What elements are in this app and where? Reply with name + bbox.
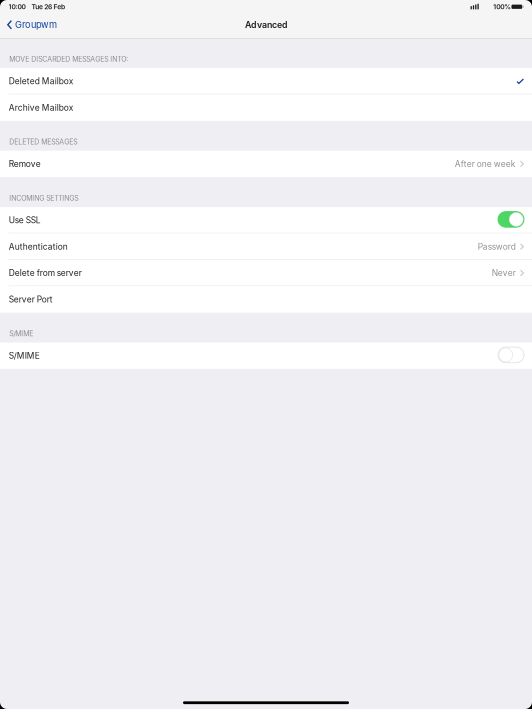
staticText: Never (492, 268, 516, 278)
button[interactable]: S/MIME (0, 342, 532, 369)
staticText: S/MIME (9, 351, 40, 361)
button[interactable]: Remove (0, 151, 532, 177)
staticText: 100% (493, 3, 511, 11)
staticText: Groupwm (15, 19, 57, 30)
staticText: S/MIME (9, 329, 33, 338)
staticText: DELETED MESSAGES (9, 138, 77, 146)
staticText: After one week (455, 159, 516, 169)
staticText: Archive Mailbox (9, 102, 74, 113)
button[interactable]: Deleted Mailbox (0, 68, 532, 94)
button[interactable]: Server Port (0, 286, 532, 313)
staticText: Authentication (9, 241, 68, 252)
staticText: 10:00 (9, 3, 26, 11)
button[interactable]: Delete from server (0, 260, 532, 286)
staticText: Tue 26 Feb (31, 3, 65, 11)
staticText: Deleted Mailbox (9, 76, 74, 86)
staticText: Delete from server (9, 268, 82, 278)
staticText: Use SSL (9, 215, 41, 225)
button[interactable]: Groupwm (0, 13, 63, 36)
staticText: Server Port (9, 294, 53, 304)
staticText: Password (478, 241, 516, 252)
staticText: Advanced (245, 19, 287, 30)
staticText: INCOMING SETTINGS (9, 194, 78, 202)
staticText: MOVE DISCARDED MESSAGES INTO: (9, 55, 128, 63)
button[interactable]: Authentication (0, 233, 532, 260)
button[interactable]: Archive Mailbox (0, 94, 532, 121)
staticText: Remove (9, 159, 41, 169)
button[interactable]: Use SSL (0, 207, 532, 233)
